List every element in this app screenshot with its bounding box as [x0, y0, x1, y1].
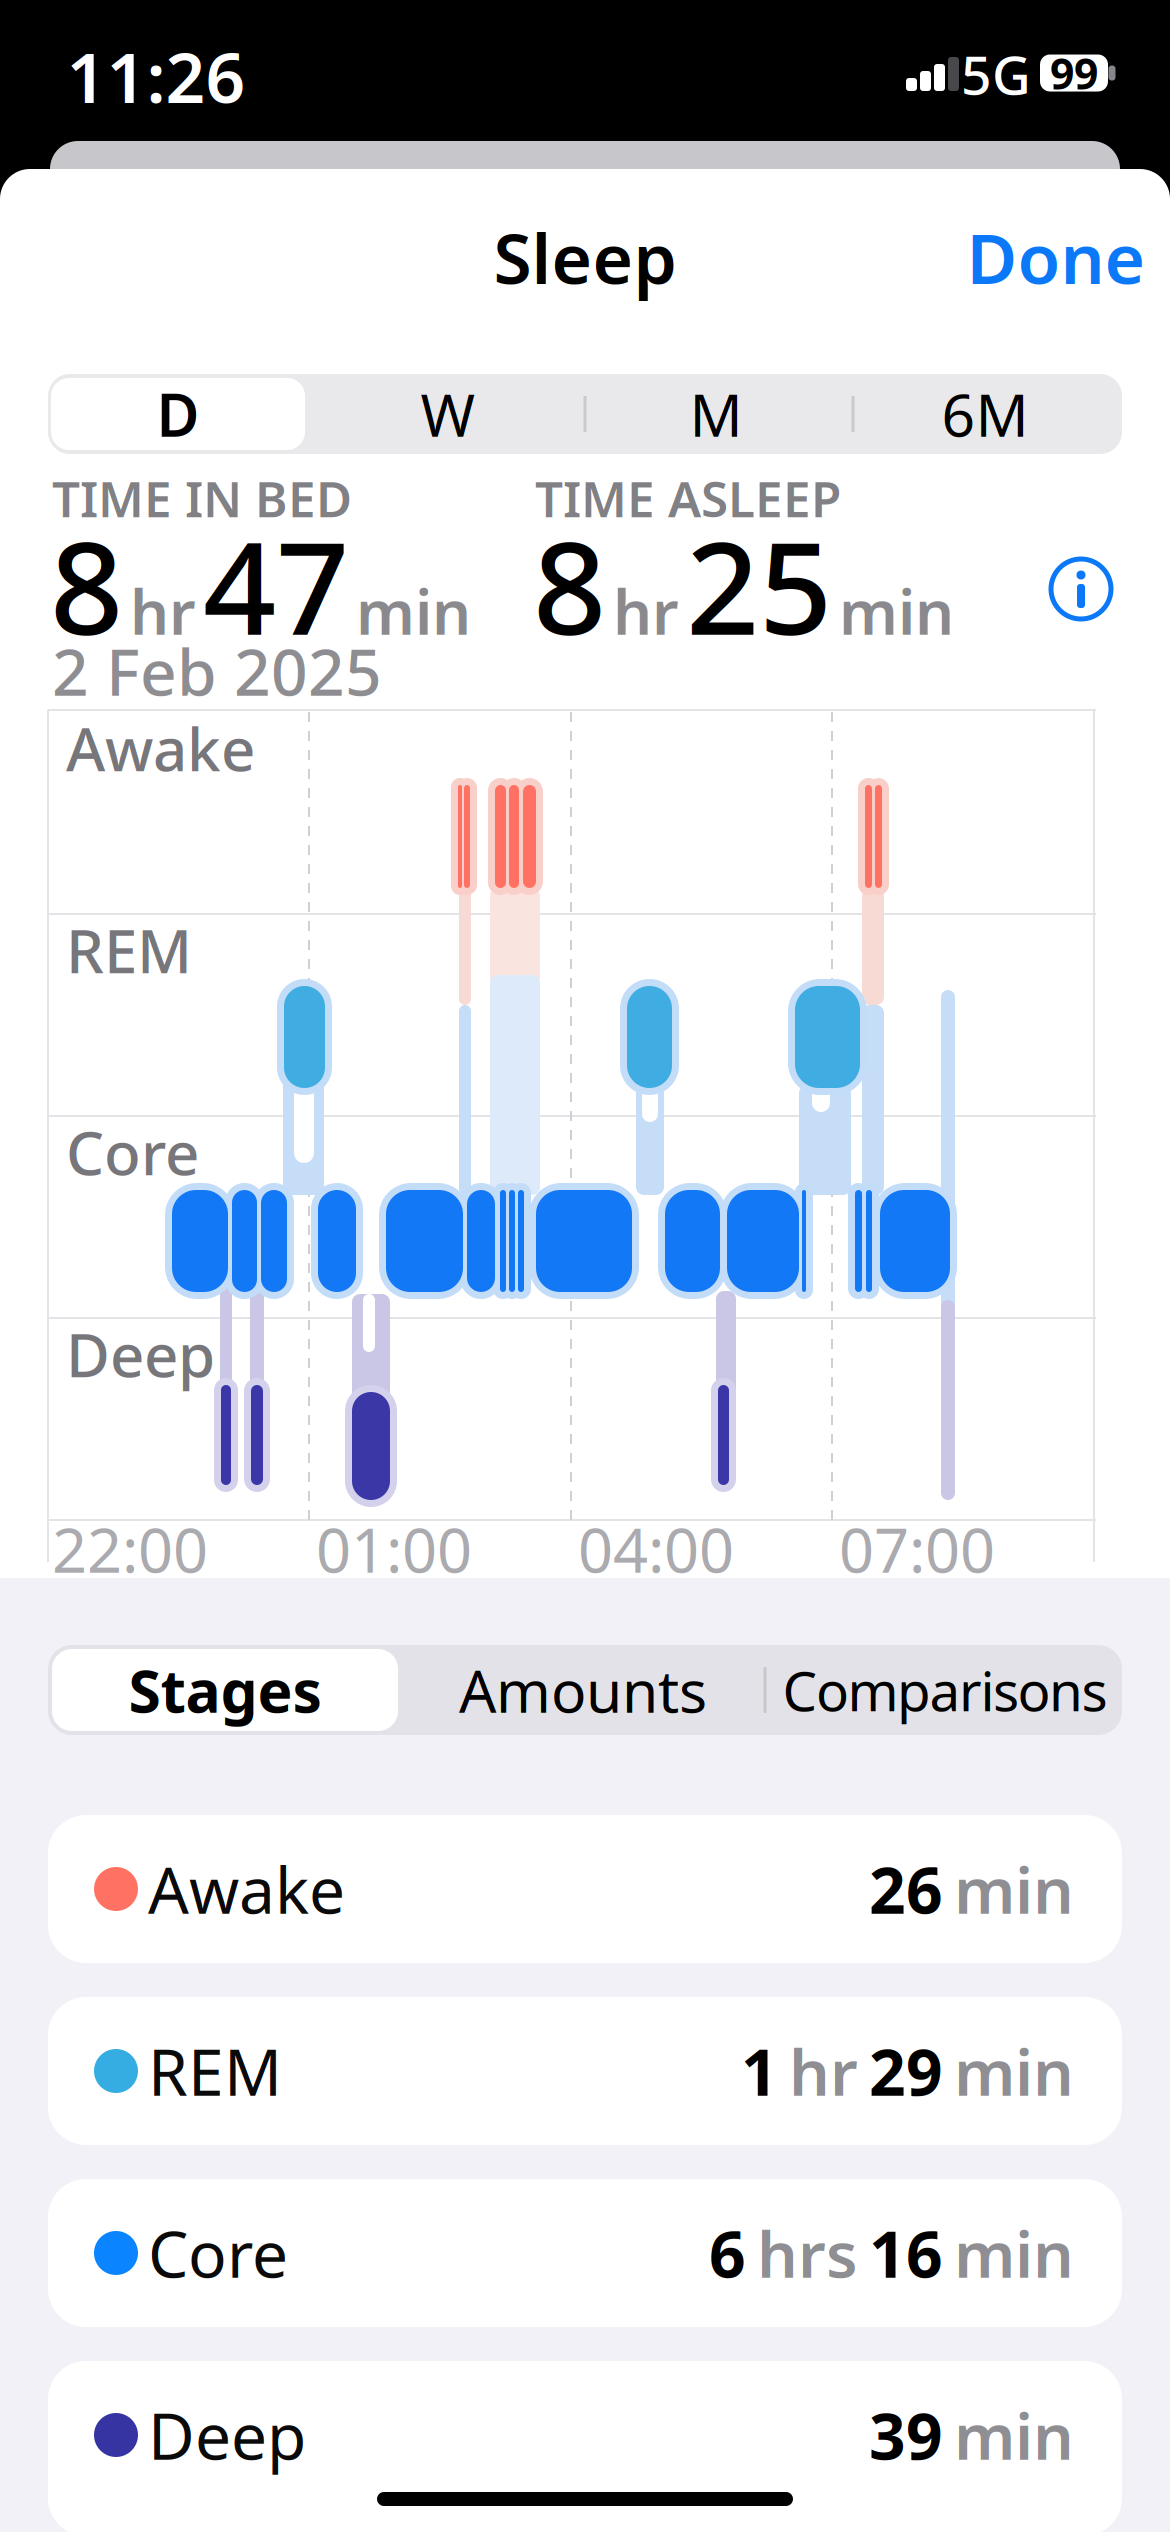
button[interactable]: Done	[966, 211, 1145, 303]
staticText: 07:00	[839, 1508, 995, 1590]
button[interactable]: Comparisons	[767, 1648, 1123, 1732]
staticText: Sleep	[493, 211, 676, 303]
staticText: 29	[869, 2028, 943, 2113]
staticText: 5G	[961, 39, 1031, 109]
staticText: 16	[869, 2210, 943, 2295]
staticText: 8	[50, 500, 123, 670]
button[interactable]: D	[51, 375, 305, 453]
staticText: 01:00	[316, 1508, 472, 1590]
staticText: min	[954, 1846, 1074, 1931]
staticText: min	[954, 2392, 1074, 2477]
staticText: REM	[66, 910, 192, 990]
staticText: D	[156, 375, 199, 453]
staticText: 99	[1050, 45, 1098, 101]
staticText: min	[954, 2210, 1074, 2295]
staticText: hr	[130, 570, 196, 651]
staticText: Deep	[66, 1314, 215, 1394]
button[interactable]: 6M	[875, 376, 1095, 452]
staticText: 11:26	[66, 30, 245, 122]
staticText: hr	[789, 2028, 858, 2113]
staticText: 1	[741, 2028, 778, 2113]
staticText: TIME IN BED	[52, 465, 352, 531]
staticText: Stages	[128, 1651, 321, 1729]
button[interactable]: More information	[1048, 556, 1114, 622]
staticText: 47	[203, 500, 349, 670]
staticText: 2 Feb 2025	[52, 628, 382, 713]
staticText: Core	[66, 1112, 199, 1192]
staticText: min	[954, 2028, 1074, 2113]
staticText: Awake	[66, 708, 255, 788]
staticText: 39	[869, 2392, 943, 2477]
staticText: min	[356, 570, 471, 651]
staticText: Comparisons	[782, 1654, 1107, 1726]
staticText: hrs	[757, 2210, 858, 2295]
button[interactable]: W	[338, 376, 558, 452]
staticText: Done	[966, 211, 1145, 303]
staticText: Amounts	[459, 1651, 707, 1729]
staticText: REM	[148, 2028, 282, 2113]
button[interactable]: Amounts	[433, 1648, 733, 1732]
staticText: min	[839, 570, 954, 651]
staticText: W	[420, 375, 475, 453]
button[interactable]: Stages	[52, 1649, 398, 1731]
staticText: 22:00	[52, 1508, 208, 1590]
staticText: 6M	[941, 375, 1028, 453]
staticText: Core	[148, 2210, 288, 2295]
staticText: M	[689, 375, 742, 453]
staticText: 04:00	[578, 1508, 734, 1590]
staticText: Deep	[148, 2392, 306, 2477]
staticText: hr	[613, 570, 679, 651]
staticText: 26	[869, 1846, 943, 1931]
staticText: Awake	[148, 1846, 345, 1931]
staticText: 25	[686, 500, 832, 670]
staticText: TIME ASLEEP	[535, 465, 841, 531]
staticText: 6	[709, 2210, 746, 2295]
staticText: 8	[533, 500, 606, 670]
button[interactable]: M	[606, 376, 826, 452]
